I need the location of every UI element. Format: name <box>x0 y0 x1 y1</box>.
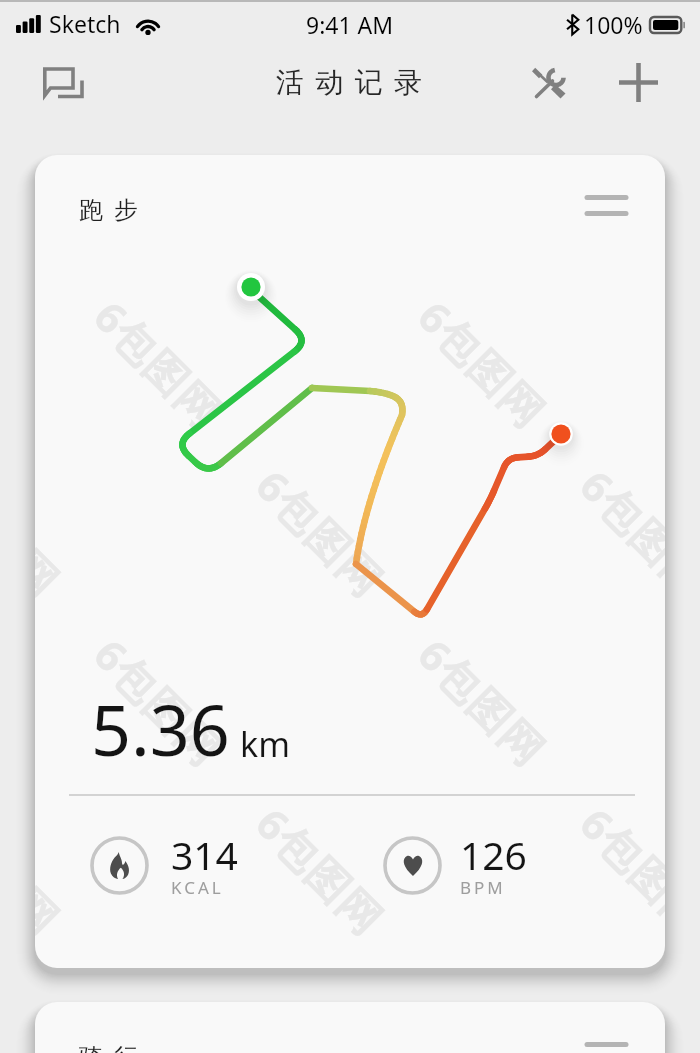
staticText: 100% <box>584 9 643 40</box>
button[interactable]: 跑 步 <box>35 155 665 968</box>
staticText: 5.36 <box>91 681 230 776</box>
button[interactable]: Messages <box>32 54 95 112</box>
button[interactable]: More options <box>575 1029 637 1053</box>
staticText: 骑 行 <box>79 1039 141 1053</box>
button[interactable]: More options <box>575 182 637 228</box>
staticText: Sketch <box>49 8 121 39</box>
staticText: KCAL <box>171 876 224 899</box>
button[interactable]: Add <box>607 53 669 111</box>
button[interactable]: Tools <box>518 53 580 111</box>
staticText: BPM <box>460 876 506 899</box>
button[interactable]: 126 <box>383 836 598 898</box>
staticText: km <box>240 721 290 767</box>
staticText: 126 <box>460 828 527 881</box>
button[interactable]: 314 <box>90 836 305 898</box>
staticText: 活 动 记 录 <box>276 62 424 100</box>
button[interactable]: 骑 行 <box>35 1002 665 1053</box>
staticText: 314 <box>171 828 238 881</box>
staticText: 9:41 AM <box>306 9 394 40</box>
staticText: 跑 步 <box>79 192 141 225</box>
